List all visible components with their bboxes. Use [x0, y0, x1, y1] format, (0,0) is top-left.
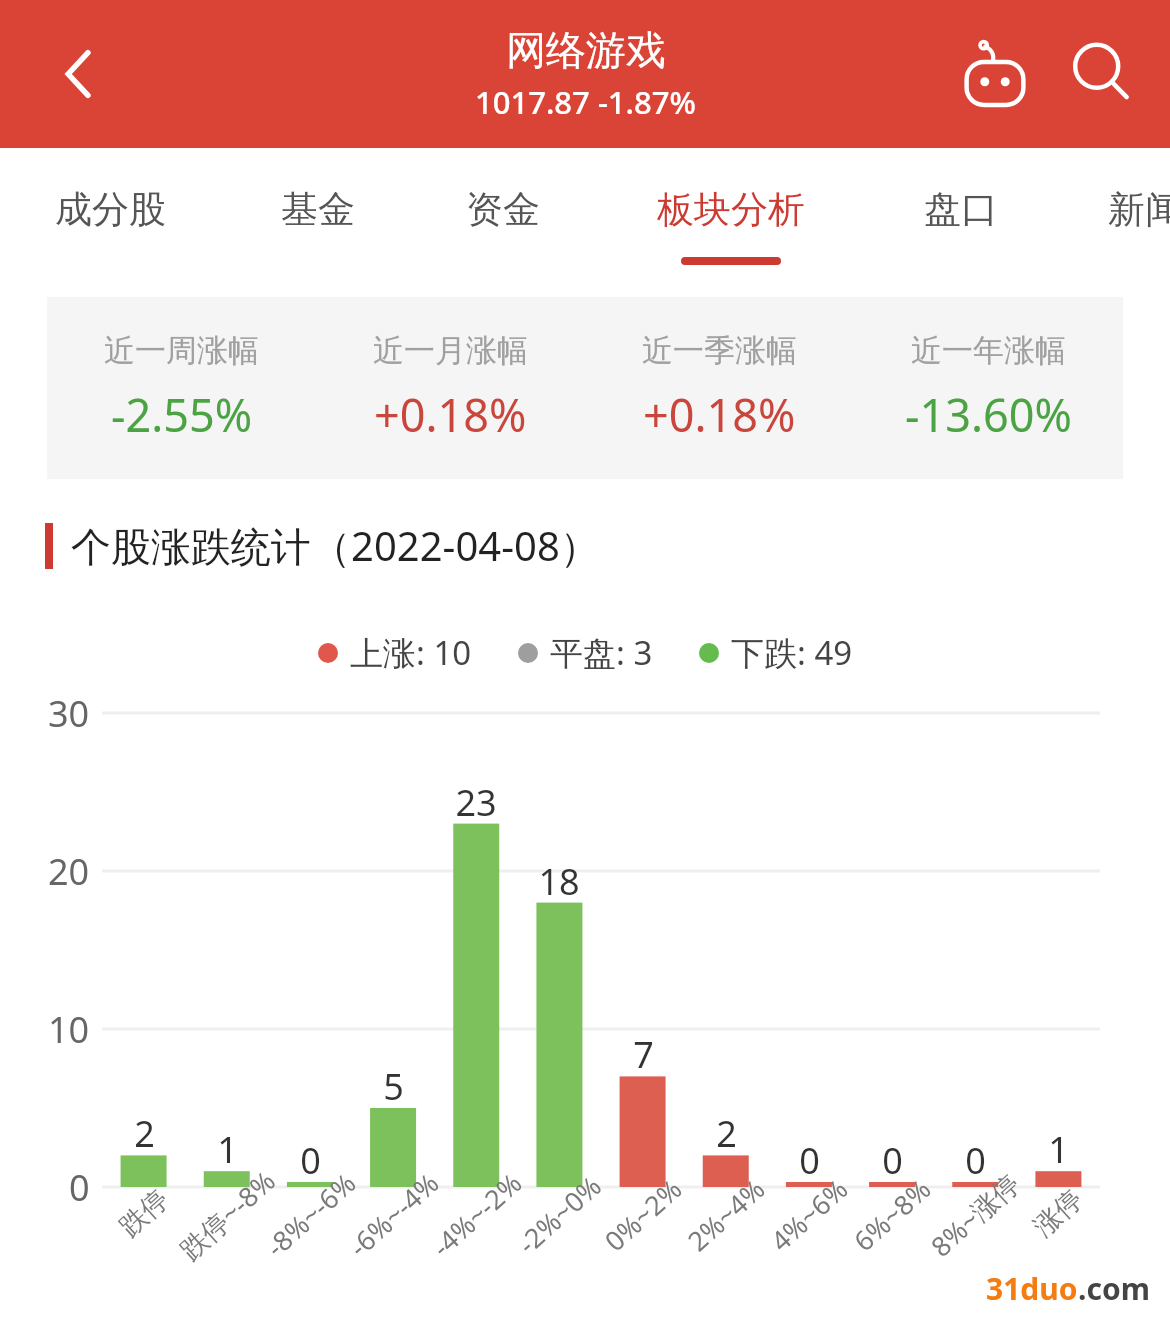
staticText: -6%~-4% [341, 1164, 446, 1265]
button[interactable]: Back [34, 36, 110, 112]
staticText: 新闻 [1108, 186, 1170, 233]
staticText: 0%~2% [596, 1170, 689, 1259]
staticText: 下跌: 49 [731, 630, 853, 675]
button[interactable]: 板块分析 [631, 148, 831, 284]
staticText: -4%~-2% [424, 1164, 529, 1265]
staticText: 0 [69, 1163, 90, 1212]
staticText: 0 [965, 1136, 986, 1185]
staticText: 1017.87 -1.87% [475, 81, 696, 123]
staticText: 0 [799, 1136, 820, 1185]
staticText: 1 [1048, 1125, 1069, 1174]
staticText: 成分股 [55, 186, 166, 233]
staticText: 涨停 [1027, 1182, 1089, 1244]
staticText: 近一周涨幅 [104, 331, 259, 370]
staticText: +0.18% [374, 384, 527, 445]
staticText: 近一季涨幅 [642, 331, 797, 370]
staticText: 0 [300, 1136, 321, 1185]
staticText: 上涨: 10 [350, 630, 472, 675]
button[interactable]: 新闻 [1045, 148, 1170, 284]
staticText: 个股涨跌统计（2022-04-08） [71, 518, 600, 573]
staticText: .com [1078, 1268, 1150, 1309]
staticText: 4%~6% [762, 1170, 855, 1259]
staticText: 2 [716, 1109, 737, 1158]
staticText: 8%~涨停 [922, 1165, 1027, 1264]
staticText: 资金 [466, 186, 540, 233]
staticText: 基金 [281, 186, 355, 233]
staticText: +0.18% [643, 384, 796, 445]
button[interactable]: 成分股 [10, 148, 210, 284]
staticText: 2 [134, 1109, 155, 1158]
staticText: -2.55% [111, 384, 253, 445]
button[interactable]: 盘口 [861, 148, 1061, 284]
staticText: 5 [383, 1062, 404, 1111]
staticText: -8%~-6% [258, 1164, 363, 1265]
staticText: 6%~8% [845, 1170, 938, 1259]
staticText: 盘口 [924, 186, 998, 233]
staticText: 2%~4% [679, 1170, 772, 1259]
staticText: -13.60% [905, 384, 1072, 445]
staticText: 10 [48, 1005, 90, 1054]
staticText: 7 [633, 1030, 654, 1079]
staticText: 31duo [986, 1268, 1078, 1309]
staticText: 23 [455, 778, 497, 827]
staticText: 近一月涨幅 [373, 331, 528, 370]
button[interactable]: Assistant [952, 31, 1038, 117]
staticText: -2%~0% [509, 1167, 609, 1262]
staticText: 30 [48, 689, 90, 738]
staticText: 近一年涨幅 [911, 331, 1066, 370]
staticText: 1 [217, 1125, 238, 1174]
staticText: 0 [882, 1136, 903, 1185]
staticText: 18 [538, 857, 580, 906]
button[interactable]: 基金 [218, 148, 418, 284]
staticText: 跌停 [113, 1182, 175, 1244]
staticText: 板块分析 [657, 186, 805, 233]
staticText: 平盘: 3 [550, 630, 653, 675]
staticText: 20 [48, 847, 90, 896]
staticText: 网络游戏 [506, 25, 666, 75]
staticText: 跌停~-8% [172, 1162, 283, 1267]
button[interactable]: Search [1058, 31, 1144, 117]
button[interactable]: 资金 [403, 148, 603, 284]
